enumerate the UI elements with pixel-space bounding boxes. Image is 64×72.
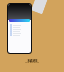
button[interactable]	[8, 24, 31, 26]
button[interactable]	[8, 32, 31, 34]
staticText: File Records	[25, 60, 39, 63]
button[interactable]	[9, 19, 30, 22]
button[interactable]	[8, 30, 31, 32]
button[interactable]	[8, 26, 31, 28]
button[interactable]	[8, 34, 31, 36]
button[interactable]	[8, 28, 31, 30]
staticText: SAVE	[27, 58, 38, 63]
